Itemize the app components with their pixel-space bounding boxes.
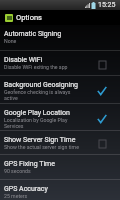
staticText: GPS Fixing Time xyxy=(4,160,55,168)
staticText: Background Geosigning xyxy=(4,81,79,89)
button[interactable]: Checked xyxy=(96,86,108,96)
staticText: 90 seconds xyxy=(4,168,31,174)
staticText: Localization by Google Play Services xyxy=(4,117,83,129)
staticText: Automatic Signing xyxy=(4,30,62,38)
button[interactable]: GPS Accuracy xyxy=(0,180,120,200)
button[interactable]: Checked xyxy=(96,114,108,124)
staticText: Disable WiFi xyxy=(4,56,43,64)
button[interactable]: Show Server Sign Time xyxy=(0,131,120,154)
button[interactable]: Disable WiFi xyxy=(0,51,120,75)
button[interactable]: Automatic Signing xyxy=(0,25,120,50)
staticText: Disable WiFi exiting the app xyxy=(4,64,68,70)
staticText: None xyxy=(4,38,17,44)
button[interactable]: Background Geosigning xyxy=(0,76,120,103)
staticText: 15:25 xyxy=(98,1,116,9)
staticText: Google Play Location xyxy=(4,109,70,117)
button[interactable]: Google Play Location xyxy=(0,104,120,130)
staticText: Show the actual server sign time xyxy=(4,144,79,150)
staticText: 25 meters xyxy=(4,193,28,199)
button[interactable]: Unchecked xyxy=(96,139,108,149)
other: App icon xyxy=(5,14,13,22)
staticText: Show Server Sign Time xyxy=(4,136,76,144)
staticText: Geofence checking is always active xyxy=(4,89,83,101)
staticText: GPS Accuracy xyxy=(4,185,48,193)
staticText: Options xyxy=(16,13,42,22)
button[interactable]: Unchecked xyxy=(96,60,108,70)
button[interactable]: App icon xyxy=(0,10,120,25)
button[interactable]: GPS Fixing Time xyxy=(0,155,120,179)
